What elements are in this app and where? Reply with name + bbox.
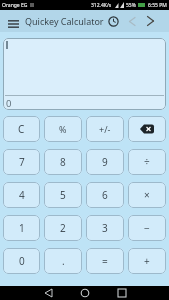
button[interactable]: 4 bbox=[3, 182, 40, 208]
staticText: + bbox=[144, 254, 150, 268]
button[interactable] bbox=[6, 17, 20, 31]
staticText: 4 bbox=[19, 188, 25, 202]
button[interactable]: % bbox=[44, 116, 82, 142]
staticText: Quickey Calculator bbox=[25, 15, 104, 27]
staticText: 5 bbox=[60, 188, 66, 202]
button[interactable]: 7 bbox=[3, 149, 40, 175]
button[interactable]: 1 bbox=[3, 215, 40, 241]
staticText: ÷ bbox=[144, 155, 150, 169]
staticText: 8 bbox=[60, 155, 66, 169]
button[interactable]: 2 bbox=[44, 215, 82, 241]
button[interactable] bbox=[107, 15, 120, 28]
staticText: 9 bbox=[102, 155, 108, 169]
staticText: C bbox=[18, 122, 25, 136]
button[interactable]: 3 bbox=[86, 215, 124, 241]
button[interactable] bbox=[126, 15, 138, 27]
staticText: 6 bbox=[102, 188, 108, 202]
button[interactable] bbox=[38, 286, 58, 300]
staticText: 0 bbox=[6, 97, 12, 110]
staticText: × bbox=[144, 188, 150, 202]
staticText: 312.4K/s bbox=[91, 2, 112, 9]
button[interactable]: +/- bbox=[86, 116, 124, 142]
button[interactable]: = bbox=[86, 248, 124, 274]
button[interactable]: ÷ bbox=[128, 149, 166, 175]
staticText: 0 bbox=[19, 254, 25, 268]
button[interactable] bbox=[144, 15, 156, 27]
button[interactable]: − bbox=[128, 215, 166, 241]
staticText: 1 bbox=[19, 221, 25, 235]
button[interactable]: × bbox=[128, 182, 166, 208]
staticText: = bbox=[102, 254, 108, 268]
button[interactable] bbox=[75, 286, 95, 300]
staticText: Orange EG bbox=[2, 2, 28, 9]
staticText: +/- bbox=[99, 123, 111, 135]
button[interactable]: 5 bbox=[44, 182, 82, 208]
staticText: 2 bbox=[60, 221, 66, 235]
button[interactable] bbox=[128, 116, 166, 142]
staticText: 7 bbox=[19, 155, 25, 169]
button[interactable]: . bbox=[44, 248, 82, 274]
staticText: − bbox=[144, 221, 150, 235]
button[interactable]: 8 bbox=[44, 149, 82, 175]
staticText: 55% bbox=[126, 2, 136, 9]
button[interactable]: 0 bbox=[3, 248, 40, 274]
button[interactable]: + bbox=[128, 248, 166, 274]
staticText: % bbox=[59, 123, 67, 135]
button[interactable] bbox=[112, 286, 132, 300]
button[interactable]: C bbox=[3, 116, 40, 142]
button[interactable]: 6 bbox=[86, 182, 124, 208]
staticText: 6:55 PM bbox=[148, 2, 167, 9]
staticText: . bbox=[62, 254, 65, 268]
button[interactable]: 9 bbox=[86, 149, 124, 175]
staticText: 3 bbox=[102, 221, 108, 235]
